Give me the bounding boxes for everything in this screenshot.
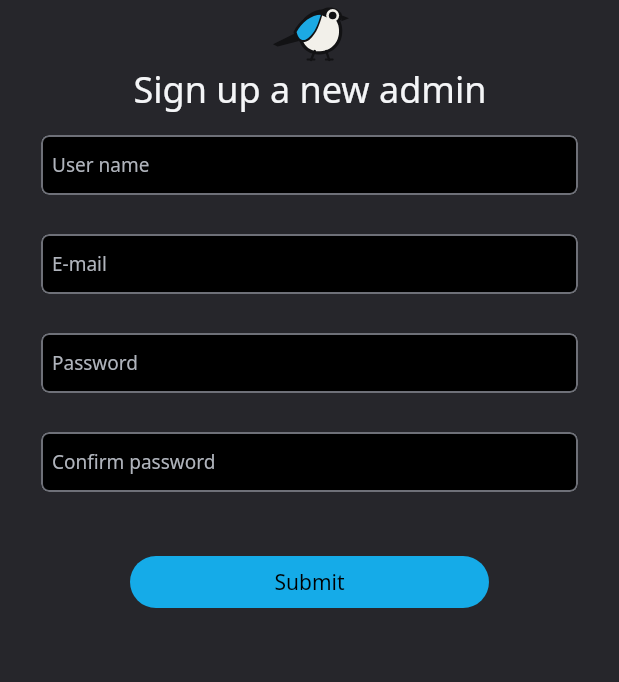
button[interactable]: E-mail [41, 234, 578, 294]
button[interactable]: Password [41, 333, 578, 393]
staticText: Submit [274, 568, 345, 597]
other: Bluebird logo [273, 4, 349, 60]
button[interactable]: Confirm password [41, 432, 578, 492]
button[interactable]: Submit [130, 556, 489, 608]
staticText: Confirm password [52, 449, 216, 475]
button[interactable]: User name [41, 135, 578, 195]
staticText: Password [52, 350, 138, 376]
staticText: Sign up a new admin [133, 65, 487, 114]
staticText: E-mail [52, 251, 107, 277]
staticText: User name [52, 152, 150, 178]
